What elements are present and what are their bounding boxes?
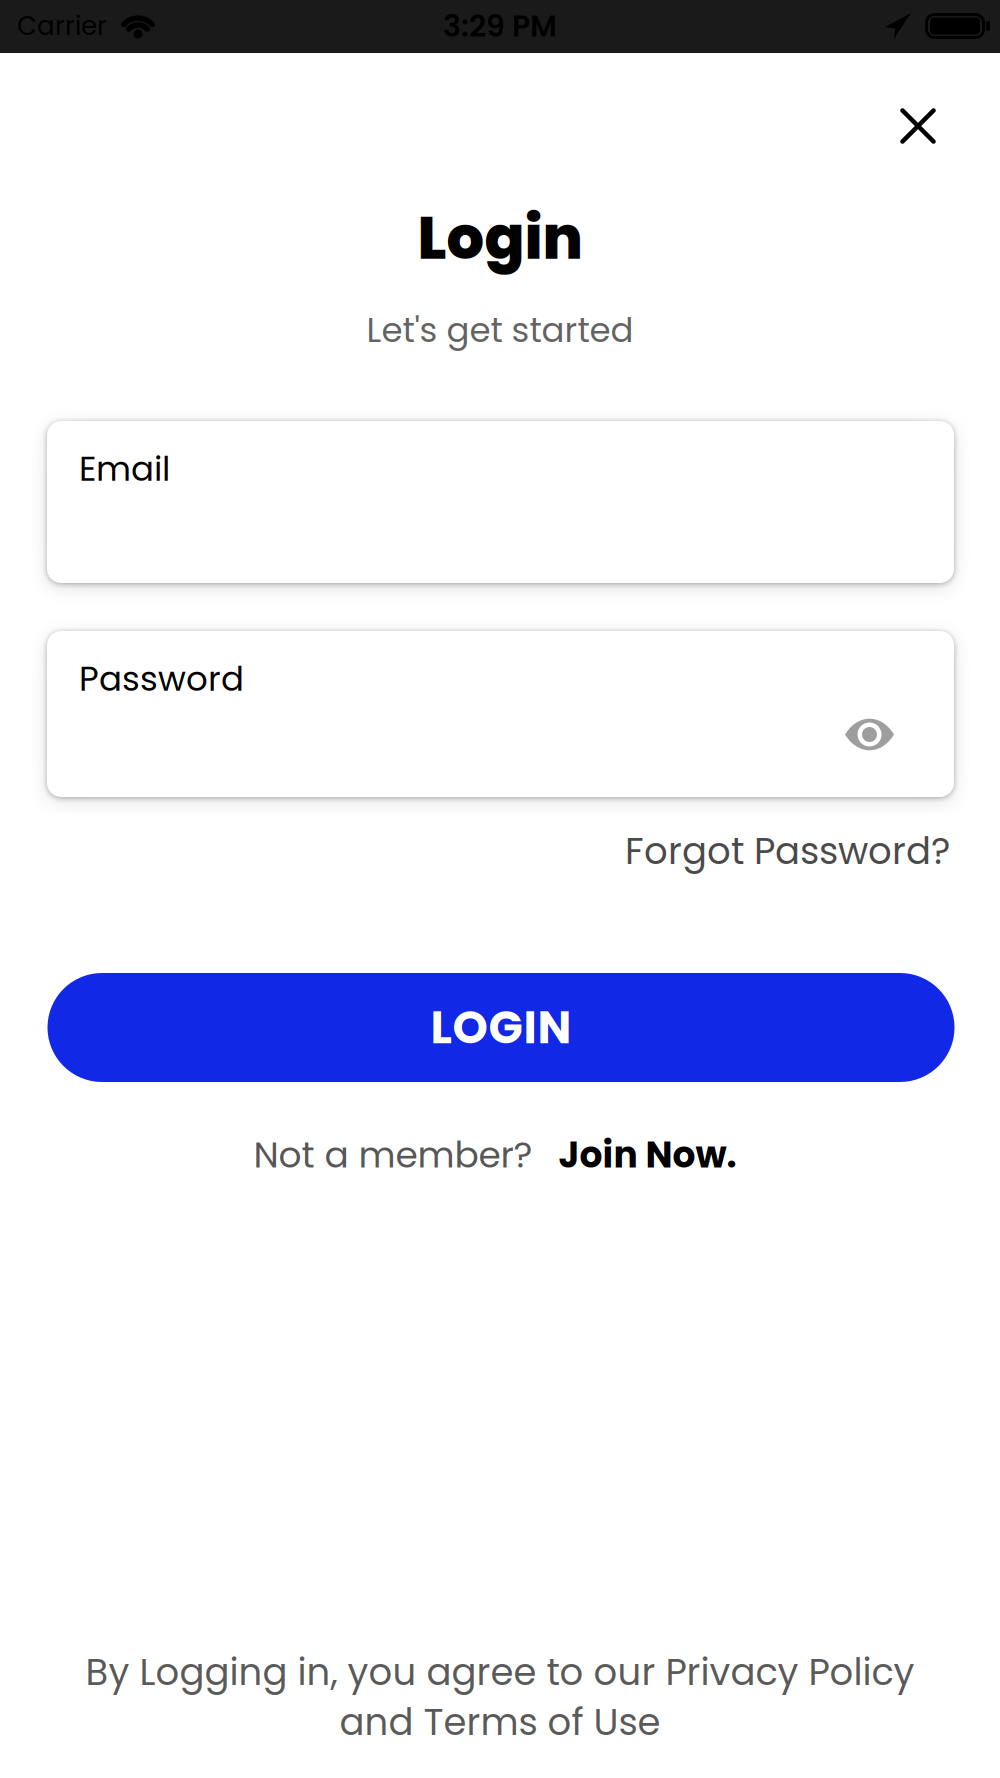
button[interactable]	[882, 90, 953, 161]
staticText: LOGIN	[430, 996, 571, 1059]
button[interactable]: Email	[47, 421, 954, 583]
staticText: and Terms of Use	[339, 1696, 660, 1748]
staticText: Carrier	[17, 8, 107, 44]
staticText: Password	[79, 655, 244, 703]
button[interactable]: Password	[47, 631, 954, 797]
staticText: Not a member?	[253, 1130, 532, 1180]
button[interactable]	[833, 707, 906, 762]
staticText: 3:29 PM	[443, 5, 557, 47]
staticText: Let's get started	[366, 306, 633, 354]
staticText: Forgot Password?	[625, 825, 950, 877]
staticText: Login	[417, 197, 582, 279]
staticText: Email	[79, 445, 170, 493]
staticText: By Logging in, you agree to our Privacy …	[85, 1646, 914, 1698]
button[interactable]: LOGIN	[47, 973, 954, 1082]
staticText: Join Now.	[558, 1130, 736, 1180]
button[interactable]: Not a member?	[253, 1130, 736, 1180]
button[interactable]: Forgot Password?	[50, 825, 950, 877]
